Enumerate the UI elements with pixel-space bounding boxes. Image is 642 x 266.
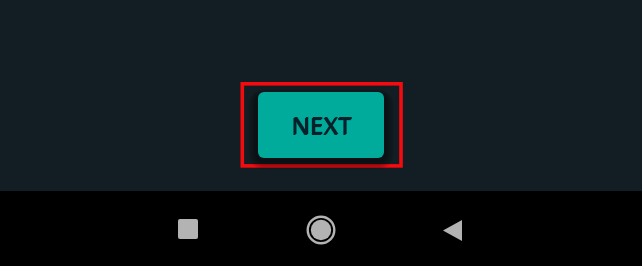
button[interactable]: Home	[293, 202, 349, 258]
button[interactable]: NEXT	[258, 92, 384, 158]
button[interactable]: Back	[424, 202, 480, 258]
button[interactable]: Recent apps	[160, 201, 216, 257]
staticText: NEXT	[291, 109, 352, 142]
staticText: NEXT	[292, 108, 353, 141]
